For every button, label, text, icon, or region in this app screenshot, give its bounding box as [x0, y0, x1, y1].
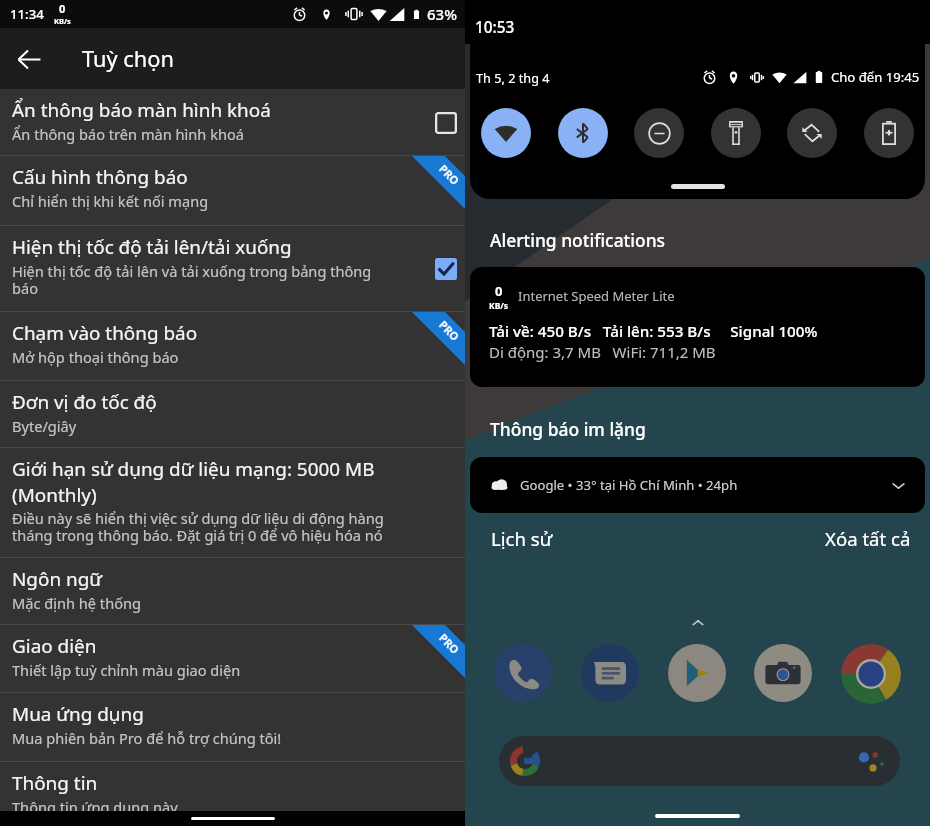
staticText: Thông tin — [12, 770, 98, 796]
staticText: Ẩn thông báo màn hình khoá — [12, 97, 271, 123]
staticText: Thông tin ứng dụng này — [12, 797, 178, 811]
staticText: Ẩn thông báo trên màn hình khoá — [12, 124, 244, 144]
staticText: Mở hộp thoại thông báo — [12, 347, 179, 367]
button[interactable]: Hiện thị tốc độ tải lên/tải xuống — [0, 226, 465, 312]
staticText: Thiết lập tuỳ chỉnh màu giao diện — [12, 660, 241, 680]
button[interactable]: Giao diện — [0, 625, 465, 693]
staticText: Tuỳ chọn — [82, 44, 174, 74]
staticText: PRO — [436, 630, 463, 657]
button[interactable]: Auto rotate — [787, 108, 837, 158]
button[interactable]: Battery saver — [864, 108, 914, 158]
button[interactable]: Back — [0, 30, 58, 88]
button[interactable]: Giới hạn sử dụng dữ liệu mạng: 5000 MB (… — [0, 448, 465, 558]
staticText: KB/s — [54, 16, 71, 26]
button[interactable]: Ẩn thông báo màn hình khoá — [0, 89, 465, 156]
staticText: Cho đến 19:45 — [831, 68, 920, 86]
other: Toggle — [435, 112, 457, 134]
staticText: Th 5, 2 thg 4 — [476, 69, 550, 86]
button[interactable]: Đơn vị đo tốc độ — [0, 381, 465, 448]
button[interactable]: Camera — [754, 644, 812, 702]
staticText: 63% — [427, 4, 457, 24]
staticText: Giới hạn sử dụng dữ liệu mạng: 5000 MB (… — [12, 456, 375, 507]
staticText: Di động: 3,7 MB WiFi: 711,2 MB — [489, 342, 716, 362]
button[interactable]: Flashlight — [711, 108, 761, 158]
button[interactable]: Lịch sử — [491, 526, 553, 551]
button[interactable]: Bluetooth — [558, 108, 608, 158]
button[interactable]: Phone — [494, 644, 552, 702]
staticText: Hiện thị tốc độ tải lên và tải xuống tro… — [12, 261, 372, 298]
button[interactable]: Assistant — [499, 736, 900, 786]
staticText: Google • 33° tại Hồ Chí Minh • 24ph — [520, 476, 738, 494]
button[interactable]: Do not disturb — [634, 108, 684, 158]
staticText: Thông báo im lặng — [490, 417, 646, 441]
other: Expand — [890, 477, 907, 494]
button[interactable]: Wi-Fi — [481, 108, 531, 158]
button[interactable]: Messages — [581, 644, 639, 702]
button[interactable]: Xóa tất cả — [825, 526, 911, 551]
button[interactable]: Cấu hình thông báo — [0, 156, 465, 226]
staticText: Mặc định hệ thống — [12, 593, 141, 613]
button[interactable]: Mua ứng dụng — [0, 693, 465, 762]
staticText: 11:34 — [10, 5, 44, 23]
other: All apps — [690, 615, 706, 631]
staticText: Giao diện — [12, 633, 97, 659]
staticText: Alerting notifications — [490, 228, 666, 252]
other: Assistant — [855, 746, 885, 776]
staticText: 0 — [59, 1, 66, 16]
staticText: Chỉ hiển thị khi kết nối mạng — [12, 191, 209, 211]
button[interactable]: Chạm vào thông báo — [0, 312, 465, 381]
staticText: Đơn vị đo tốc độ — [12, 389, 157, 415]
button[interactable]: 0 — [470, 267, 925, 387]
staticText: Internet Speed Meter Lite — [518, 287, 675, 305]
staticText: Điều này sẽ hiển thị việc sử dụng dữ liệ… — [12, 508, 384, 545]
staticText: PRO — [436, 317, 463, 344]
staticText: Mua phiên bản Pro để hỗ trợ chúng tôi! — [12, 728, 282, 748]
button[interactable]: Play Store — [668, 644, 726, 702]
staticText: Byte/giây — [12, 416, 77, 436]
staticText: Ngôn ngữ — [12, 566, 103, 592]
button[interactable]: Chrome — [841, 644, 901, 704]
button[interactable]: Google • 33° tại Hồ Chí Minh • 24ph — [470, 457, 925, 513]
staticText: PRO — [436, 161, 463, 188]
staticText: 10:53 — [475, 17, 515, 38]
staticText: Cấu hình thông báo — [12, 164, 188, 190]
other: Toggle — [435, 258, 457, 280]
staticText: Tải về: 450 B/s Tải lên: 553 B/s Signal … — [489, 321, 818, 342]
staticText: Hiện thị tốc độ tải lên/tải xuống — [12, 234, 292, 260]
staticText: Chạm vào thông báo — [12, 320, 198, 346]
button[interactable]: Thông tin — [0, 762, 465, 811]
staticText: KB/s — [489, 300, 509, 312]
staticText: 0 — [495, 282, 503, 300]
button[interactable]: Ngôn ngữ — [0, 558, 465, 625]
staticText: Mua ứng dụng — [12, 701, 144, 727]
